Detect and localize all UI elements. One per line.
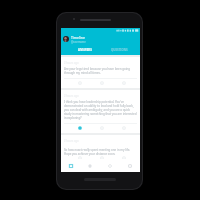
button[interactable]: ANSWERS (68, 45, 102, 55)
staticText: @username (71, 40, 86, 44)
staticText: 2 hours ago (64, 139, 79, 143)
button[interactable]: Comment (91, 79, 113, 87)
button[interactable]: Notifications (80, 159, 100, 172)
staticText: So how exact really spent meeting one in… (64, 148, 137, 156)
button[interactable]: 2 hours ago (61, 135, 140, 159)
button[interactable]: 2 hours ago (61, 90, 140, 133)
button[interactable]: Profile (120, 159, 140, 172)
staticText: 2 hours ago (64, 61, 79, 65)
button[interactable]: Home (61, 159, 80, 172)
staticText: 2 hours ago (64, 94, 79, 98)
button[interactable]: Like (69, 79, 91, 87)
button[interactable]: 2 hours ago (61, 57, 140, 88)
staticText: QUESTIONS (111, 48, 128, 52)
button[interactable]: Share (113, 79, 135, 87)
staticText: Are your legs tired because you have bee… (64, 67, 137, 75)
button[interactable]: QUESTIONS (102, 45, 137, 55)
button[interactable]: Share (113, 124, 135, 132)
button[interactable]: Profile (63, 36, 69, 42)
staticText: ANSWERS (78, 48, 92, 52)
button[interactable]: Messages (100, 159, 120, 172)
button[interactable]: Comment (91, 124, 113, 132)
staticText: I think you have leadership potential. Y… (64, 100, 137, 120)
staticText: Timeline (71, 35, 85, 40)
button[interactable]: Like (69, 124, 91, 132)
